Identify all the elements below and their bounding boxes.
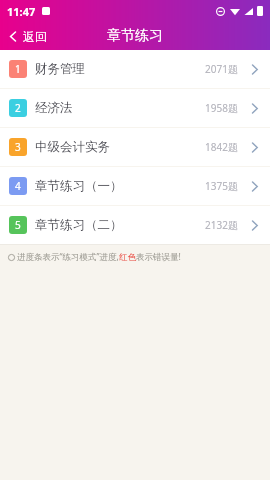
staticText: 1375题 [205,179,238,193]
button[interactable]: 4 [0,167,270,205]
staticText: 2132题 [205,218,238,232]
other: 打开 [247,179,261,193]
staticText: 11:47 [7,4,36,19]
staticText: 章节练习（一） [35,178,123,194]
staticText: 返回 [23,29,47,44]
staticText: 1958题 [205,101,238,115]
staticText: 章节练习（二） [35,217,123,233]
staticText: 3 [15,140,21,154]
staticText: 1842题 [205,140,238,154]
staticText: 5 [15,218,21,232]
button[interactable]: 2 [0,89,270,127]
staticText: 1 [15,62,21,76]
button[interactable]: 5 [0,206,270,244]
other: 打开 [247,101,261,115]
staticText: 进度条表示“练习模式”进度,红色表示错误量! [17,251,181,263]
staticText: 4 [15,179,21,193]
other: 打开 [247,62,261,76]
other: 打开 [247,218,261,232]
staticText: 经济法 [35,100,73,116]
staticText: 2071题 [205,62,238,76]
staticText: 章节练习 [107,27,163,45]
other: 打开 [247,140,261,154]
staticText: 中级会计实务 [35,139,110,155]
button[interactable]: 1 [0,50,270,88]
button[interactable]: 返回 [0,22,56,50]
button[interactable]: 3 [0,128,270,166]
staticText: 财务管理 [35,61,85,77]
staticText: 2 [15,101,21,115]
